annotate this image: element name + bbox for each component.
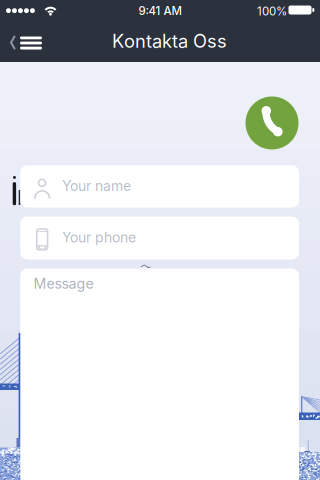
staticText: Message — [33, 275, 93, 292]
button[interactable]: Menu — [16, 32, 46, 53]
staticText: Your phone — [62, 229, 136, 246]
staticText: 9:41 AM — [138, 4, 181, 18]
staticText: 100% — [257, 4, 287, 18]
button[interactable]: Your name — [20, 165, 299, 207]
button[interactable]: Back — [5, 32, 21, 53]
staticText: Your name — [62, 177, 131, 194]
button[interactable]: Your phone — [20, 216, 299, 259]
button[interactable]: Message — [20, 269, 299, 480]
button[interactable]: Call — [245, 96, 298, 149]
staticText: Kontakta Oss — [112, 30, 227, 52]
